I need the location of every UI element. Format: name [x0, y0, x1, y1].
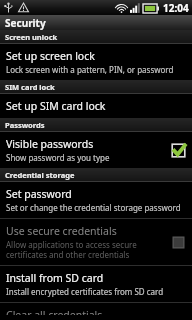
button[interactable]: Toggle setting — [170, 234, 186, 250]
button[interactable]: Clear all credentials — [0, 303, 192, 320]
staticText: Show password as you type — [6, 152, 110, 163]
button[interactable]: Use secure credentials — [0, 219, 192, 265]
staticText: Use secure credentials — [6, 224, 117, 238]
staticText: Passwords — [5, 120, 45, 130]
staticText: Security — [5, 16, 46, 30]
button[interactable]: Install from SD card — [0, 266, 192, 302]
staticText: Lock screen with a pattern, PIN, or pass… — [6, 64, 174, 75]
staticText: Install encrypted certificates from SD c… — [6, 286, 164, 297]
staticText: SIM card lock — [5, 82, 55, 92]
staticText: Set up SIM card lock — [6, 99, 106, 113]
staticText: Clear all credentials — [6, 308, 103, 315]
button[interactable]: Set up screen lock — [0, 44, 192, 80]
button[interactable]: Visible passwords — [0, 132, 192, 168]
button[interactable]: Set password — [0, 182, 192, 218]
button[interactable]: Toggle setting — [170, 142, 186, 158]
staticText: Set up screen lock — [6, 49, 95, 63]
staticText: Visible passwords — [6, 137, 94, 151]
staticText: 12:04 — [163, 1, 189, 15]
staticText: Set password — [6, 187, 72, 201]
button[interactable]: Set up SIM card lock — [0, 94, 192, 118]
staticText: Allow applications to access secure cert… — [6, 239, 165, 260]
staticText: Screen unlock — [5, 32, 58, 42]
staticText: Install from SD card — [6, 271, 104, 285]
staticText: Set or change the credential storage pas… — [6, 202, 181, 213]
staticText: Credential storage — [5, 170, 75, 180]
